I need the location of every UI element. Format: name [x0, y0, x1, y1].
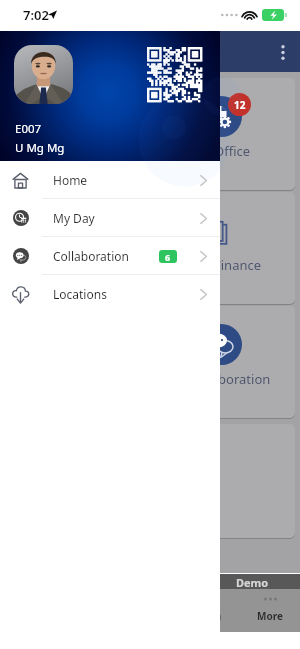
staticText: Scan: [198, 609, 222, 623]
staticText: Locations: [53, 286, 107, 302]
staticText: U Mg Mg: [15, 140, 65, 156]
button[interactable]: [5, 424, 295, 538]
button[interactable]: 12: [5, 78, 295, 190]
staticText: Finance: [214, 256, 262, 274]
button[interactable]: Finance: [5, 192, 295, 304]
button[interactable]: Home: [0, 161, 220, 199]
staticText: Demo: [236, 575, 269, 590]
staticText: E007: [15, 121, 42, 137]
staticText: More: [257, 609, 283, 623]
staticText: Collaboration: [53, 248, 129, 264]
button[interactable]: More options: [266, 35, 300, 69]
staticText: 6: [165, 251, 171, 263]
staticText: Office: [214, 142, 251, 160]
staticText: My Day: [53, 210, 95, 226]
staticText: 12: [234, 98, 246, 112]
button[interactable]: My Day: [0, 199, 220, 237]
staticText: Collaboration: [188, 370, 271, 388]
button[interactable]: Collaboration: [5, 306, 295, 418]
button[interactable]: Locations: [0, 275, 220, 313]
button[interactable]: Collaboration: [0, 237, 220, 275]
staticText: 7:02: [23, 6, 49, 24]
button[interactable]: Scan: [180, 589, 240, 632]
staticText: Home: [53, 172, 88, 188]
button[interactable]: More: [240, 589, 300, 632]
